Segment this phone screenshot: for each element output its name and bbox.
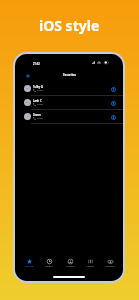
staticText: mobile bbox=[37, 89, 44, 92]
button[interactable]: Contact info bbox=[109, 85, 117, 93]
staticText: Lanh C bbox=[33, 99, 42, 103]
staticText: Contacts bbox=[66, 265, 75, 268]
staticText: Keypad bbox=[86, 265, 94, 268]
button[interactable]: Recents bbox=[39, 252, 59, 272]
staticText: mobile bbox=[37, 103, 44, 106]
staticText: Garon bbox=[33, 113, 41, 117]
button[interactable]: Contact info bbox=[109, 99, 117, 107]
button[interactable]: Voicemail bbox=[100, 252, 120, 272]
staticText: Recents bbox=[45, 265, 53, 268]
staticText: 21:52 bbox=[33, 62, 40, 66]
staticText: mobile bbox=[37, 117, 44, 120]
staticText: G bbox=[27, 115, 29, 118]
button[interactable]: LC bbox=[15, 96, 123, 110]
staticText: Tolley A bbox=[33, 85, 43, 89]
staticText: Favorites bbox=[25, 265, 34, 268]
button[interactable]: Add favorite bbox=[23, 71, 32, 80]
staticText: TA bbox=[26, 87, 29, 90]
button[interactable]: Favorites bbox=[19, 252, 39, 272]
button[interactable]: Keypad bbox=[80, 252, 100, 272]
button[interactable]: G bbox=[15, 110, 123, 124]
staticText: LC bbox=[26, 101, 29, 104]
staticText: Voicemail bbox=[105, 265, 115, 268]
button[interactable]: Contact info bbox=[109, 113, 117, 121]
staticText: iOS style bbox=[39, 16, 100, 35]
button[interactable]: Contacts bbox=[60, 252, 80, 272]
button[interactable]: TA bbox=[15, 82, 123, 96]
staticText: Favorites bbox=[63, 73, 76, 77]
